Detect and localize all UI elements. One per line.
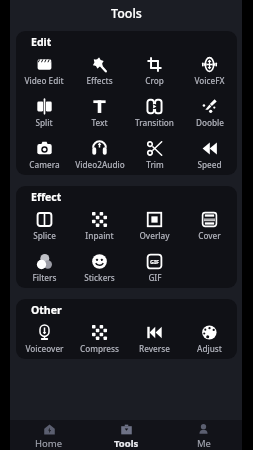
staticText: GIF — [150, 258, 160, 265]
staticText: Effect — [31, 190, 62, 204]
staticText: Trim — [146, 159, 164, 170]
button[interactable]: Splice — [16, 207, 72, 249]
button[interactable]: Effects — [72, 52, 127, 94]
button[interactable]: GIF — [127, 249, 182, 288]
staticText: Tools — [111, 5, 142, 22]
button[interactable]: Video Edit — [16, 52, 72, 94]
staticText: Crop — [145, 75, 164, 86]
staticText: Cover — [198, 230, 221, 241]
staticText: Effects — [86, 75, 113, 86]
button[interactable]: Inpaint — [72, 207, 127, 249]
button[interactable]: Stickers — [72, 249, 127, 288]
staticText: Video2Audio — [75, 159, 125, 170]
staticText: Other — [31, 303, 62, 317]
button[interactable]: Camera — [16, 136, 72, 175]
staticText: Compress — [80, 343, 119, 354]
staticText: Tools — [114, 437, 139, 450]
button[interactable]: Adjust — [182, 320, 237, 359]
button[interactable]: Trim — [127, 136, 182, 175]
staticText: Speed — [197, 159, 222, 170]
button[interactable]: Me — [165, 421, 242, 450]
staticText: Transition — [135, 117, 174, 128]
staticText: Me — [197, 437, 211, 450]
button[interactable]: Video2Audio — [72, 136, 127, 175]
button[interactable]: Text — [72, 94, 127, 136]
button[interactable]: Crop — [127, 52, 182, 94]
staticText: Adjust — [197, 343, 222, 354]
staticText: Voiceover — [25, 343, 64, 354]
staticText: Splice — [33, 230, 56, 241]
staticText: Filters — [32, 272, 57, 283]
button[interactable]: Split — [16, 94, 72, 136]
staticText: Overlay — [139, 230, 170, 241]
button[interactable]: Reverse — [127, 320, 182, 359]
button[interactable]: VoiceFX — [182, 52, 237, 94]
staticText: Split — [35, 117, 53, 128]
button[interactable]: Cover — [182, 207, 237, 249]
button[interactable]: Speed — [182, 136, 237, 175]
staticText: Home — [35, 437, 63, 450]
staticText: Dooble — [196, 117, 224, 128]
staticText: Inpaint — [85, 230, 114, 241]
staticText: Text — [91, 117, 108, 128]
button[interactable]: Transition — [127, 94, 182, 136]
button[interactable]: Compress — [72, 320, 127, 359]
button[interactable]: Tools — [88, 421, 165, 450]
staticText: GIF — [148, 272, 162, 283]
staticText: Camera — [29, 159, 60, 170]
staticText: Reverse — [139, 343, 170, 354]
button[interactable]: Dooble — [182, 94, 237, 136]
staticText: Edit — [31, 35, 52, 49]
button[interactable]: Voiceover — [16, 320, 72, 359]
staticText: Stickers — [84, 272, 115, 283]
button[interactable]: Home — [10, 421, 88, 450]
button[interactable]: Filters — [16, 249, 72, 288]
button[interactable]: Overlay — [127, 207, 182, 249]
staticText: Video Edit — [24, 75, 64, 86]
staticText: VoiceFX — [194, 75, 225, 86]
